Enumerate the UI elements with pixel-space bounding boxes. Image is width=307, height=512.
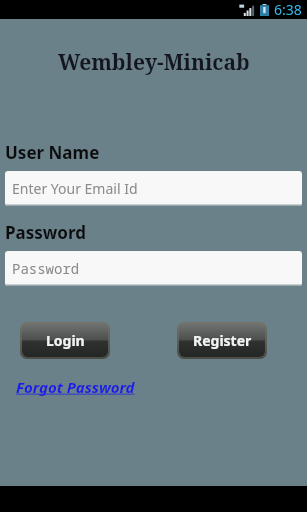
staticText: Wembley-Minicab	[58, 48, 250, 77]
button[interactable]: Register	[179, 324, 265, 357]
staticText: Login	[46, 331, 85, 350]
button[interactable]: Login	[22, 324, 108, 357]
other: Battery charging	[260, 4, 269, 16]
button[interactable]: Enter Your Email Id	[5, 171, 302, 206]
other: 3G signal strength	[239, 4, 255, 16]
button[interactable]: Forgot Password	[16, 377, 135, 397]
button[interactable]: Password	[5, 251, 302, 286]
staticText: Forgot Password	[16, 377, 135, 397]
staticText: 6:38	[274, 0, 302, 19]
staticText: User Name	[5, 141, 100, 164]
staticText: Password	[5, 221, 86, 244]
staticText: Register	[193, 331, 252, 350]
staticText: Password	[12, 259, 80, 278]
staticText: Enter Your Email Id	[12, 179, 138, 198]
